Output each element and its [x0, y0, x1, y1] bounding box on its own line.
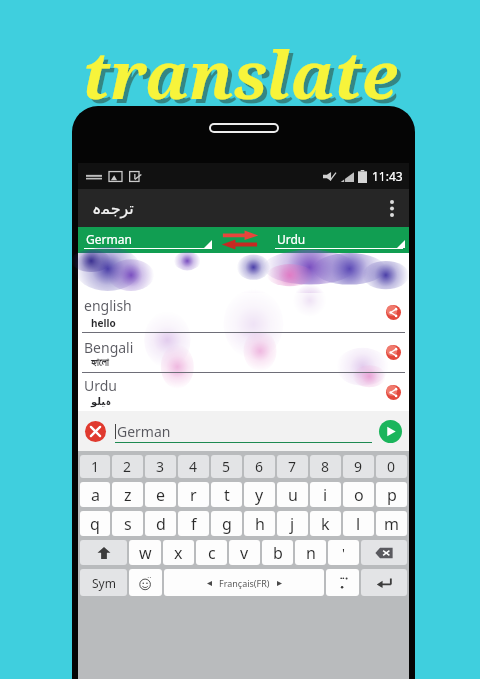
staticText: m	[384, 513, 399, 535]
button[interactable]: 5	[211, 455, 242, 478]
button[interactable]: r	[178, 482, 209, 507]
staticText: 0	[387, 457, 396, 476]
staticText: 8	[321, 457, 330, 476]
button[interactable]: o	[343, 482, 374, 507]
staticText: english	[84, 296, 132, 315]
staticText: v	[240, 542, 249, 564]
button[interactable]: x	[163, 540, 194, 565]
staticText: হ্যালো	[91, 358, 109, 368]
button[interactable]: German	[78, 227, 218, 253]
staticText: ترجمہ	[92, 199, 134, 218]
button[interactable]: v	[229, 540, 260, 565]
staticText: z	[124, 484, 132, 506]
button[interactable]: b	[262, 540, 293, 565]
button[interactable]: Clear	[85, 421, 106, 442]
staticText: d	[156, 513, 166, 535]
staticText: translate	[0, 28, 480, 118]
staticText: r	[190, 484, 197, 506]
button[interactable]: Enter	[361, 569, 407, 596]
staticText: Français(FR)	[219, 577, 270, 589]
button[interactable]: 8	[310, 455, 341, 478]
button[interactable]: s	[112, 511, 143, 536]
staticText: b	[273, 542, 283, 564]
staticText: q	[90, 513, 100, 535]
button[interactable]: d	[145, 511, 176, 536]
staticText: c	[208, 542, 216, 564]
button[interactable]: Period	[326, 569, 359, 596]
button[interactable]: Emoji	[129, 569, 162, 596]
staticText: 7	[288, 457, 297, 476]
button[interactable]: Backspace	[361, 540, 407, 565]
button[interactable]: Urdu	[269, 227, 409, 253]
staticText: j	[290, 513, 295, 535]
button[interactable]: Urdu	[78, 373, 409, 411]
button[interactable]: 9	[343, 455, 374, 478]
button[interactable]: t	[211, 482, 242, 507]
button[interactable]: Share english	[386, 305, 401, 320]
staticText: n	[306, 542, 316, 564]
staticText: x	[174, 542, 183, 564]
staticText: g	[222, 513, 232, 535]
button[interactable]: u	[277, 482, 308, 507]
staticText: German	[86, 231, 132, 247]
button[interactable]: Share Bengali	[386, 345, 401, 360]
staticText: y	[255, 484, 264, 506]
button[interactable]: w	[129, 540, 161, 565]
button[interactable]: j	[277, 511, 308, 536]
staticText: 9	[354, 457, 363, 476]
staticText: '	[342, 544, 345, 562]
button[interactable]: a	[80, 482, 110, 507]
button[interactable]: h	[244, 511, 275, 536]
button[interactable]: y	[244, 482, 275, 507]
button[interactable]: Share Urdu	[386, 385, 401, 400]
staticText: translate	[4, 32, 480, 122]
staticText: w	[139, 542, 152, 564]
button[interactable]: c	[196, 540, 227, 565]
staticText: 11:43	[372, 168, 403, 184]
button[interactable]: f	[178, 511, 209, 536]
button[interactable]: m	[376, 511, 407, 536]
button[interactable]: g	[211, 511, 242, 536]
button[interactable]: 0	[376, 455, 407, 478]
staticText: 2	[123, 457, 132, 476]
staticText: p	[387, 484, 397, 506]
button[interactable]: i	[310, 482, 341, 507]
button[interactable]: German	[115, 411, 372, 451]
button[interactable]: Français(FR)	[164, 569, 324, 596]
staticText: 6	[255, 457, 264, 476]
button[interactable]: l	[343, 511, 374, 536]
staticText: a	[91, 484, 100, 506]
button[interactable]: Sym	[80, 569, 127, 596]
button[interactable]: q	[80, 511, 110, 536]
staticText: f	[191, 513, 197, 535]
staticText: k	[321, 513, 330, 535]
button[interactable]: n	[295, 540, 326, 565]
staticText: 3	[156, 457, 165, 476]
button[interactable]: k	[310, 511, 341, 536]
button[interactable]: 6	[244, 455, 275, 478]
button[interactable]: p	[376, 482, 407, 507]
button[interactable]: e	[145, 482, 176, 507]
staticText: Bengali	[84, 338, 134, 357]
staticText: Urdu	[277, 231, 306, 247]
staticText: 1	[91, 457, 100, 476]
button[interactable]: Translate	[379, 420, 402, 443]
button[interactable]: 1	[80, 455, 110, 478]
button[interactable]: 3	[145, 455, 176, 478]
staticText: e	[156, 484, 166, 506]
staticText: Sym	[92, 575, 116, 591]
staticText: t	[224, 484, 230, 506]
staticText: h	[255, 513, 265, 535]
button[interactable]: z	[112, 482, 143, 507]
button[interactable]: 7	[277, 455, 308, 478]
button[interactable]: More options	[375, 189, 409, 227]
button[interactable]: Shift	[80, 540, 127, 565]
button[interactable]: english	[78, 293, 409, 332]
button[interactable]: 4	[178, 455, 209, 478]
button[interactable]: '	[328, 540, 359, 565]
staticText: German	[117, 422, 171, 441]
button[interactable]: 2	[112, 455, 143, 478]
button[interactable]: Bengali	[78, 333, 409, 372]
button[interactable]: Swap languages	[220, 229, 260, 251]
staticText: l	[356, 513, 361, 535]
